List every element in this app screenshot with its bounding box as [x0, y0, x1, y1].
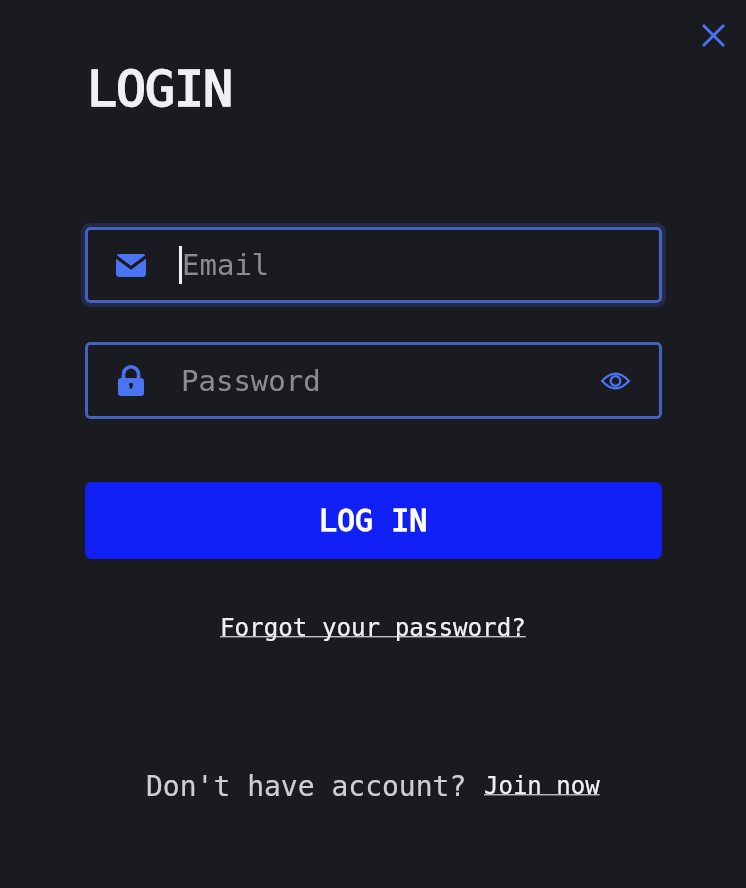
staticText: Don't have account? — [146, 770, 484, 803]
button[interactable]: Join now — [484, 772, 600, 800]
staticText: LOGIN — [87, 60, 233, 118]
button[interactable]: Email — [85, 227, 662, 303]
button[interactable]: Show password — [593, 359, 637, 403]
staticText: Email — [182, 248, 270, 282]
staticText: Password — [181, 364, 321, 398]
button[interactable]: Close — [690, 12, 736, 58]
button[interactable]: Password — [85, 342, 662, 419]
button[interactable]: LOG IN — [85, 482, 662, 559]
button[interactable]: Forgot your password? — [220, 614, 526, 642]
staticText: LOG IN — [319, 503, 428, 538]
